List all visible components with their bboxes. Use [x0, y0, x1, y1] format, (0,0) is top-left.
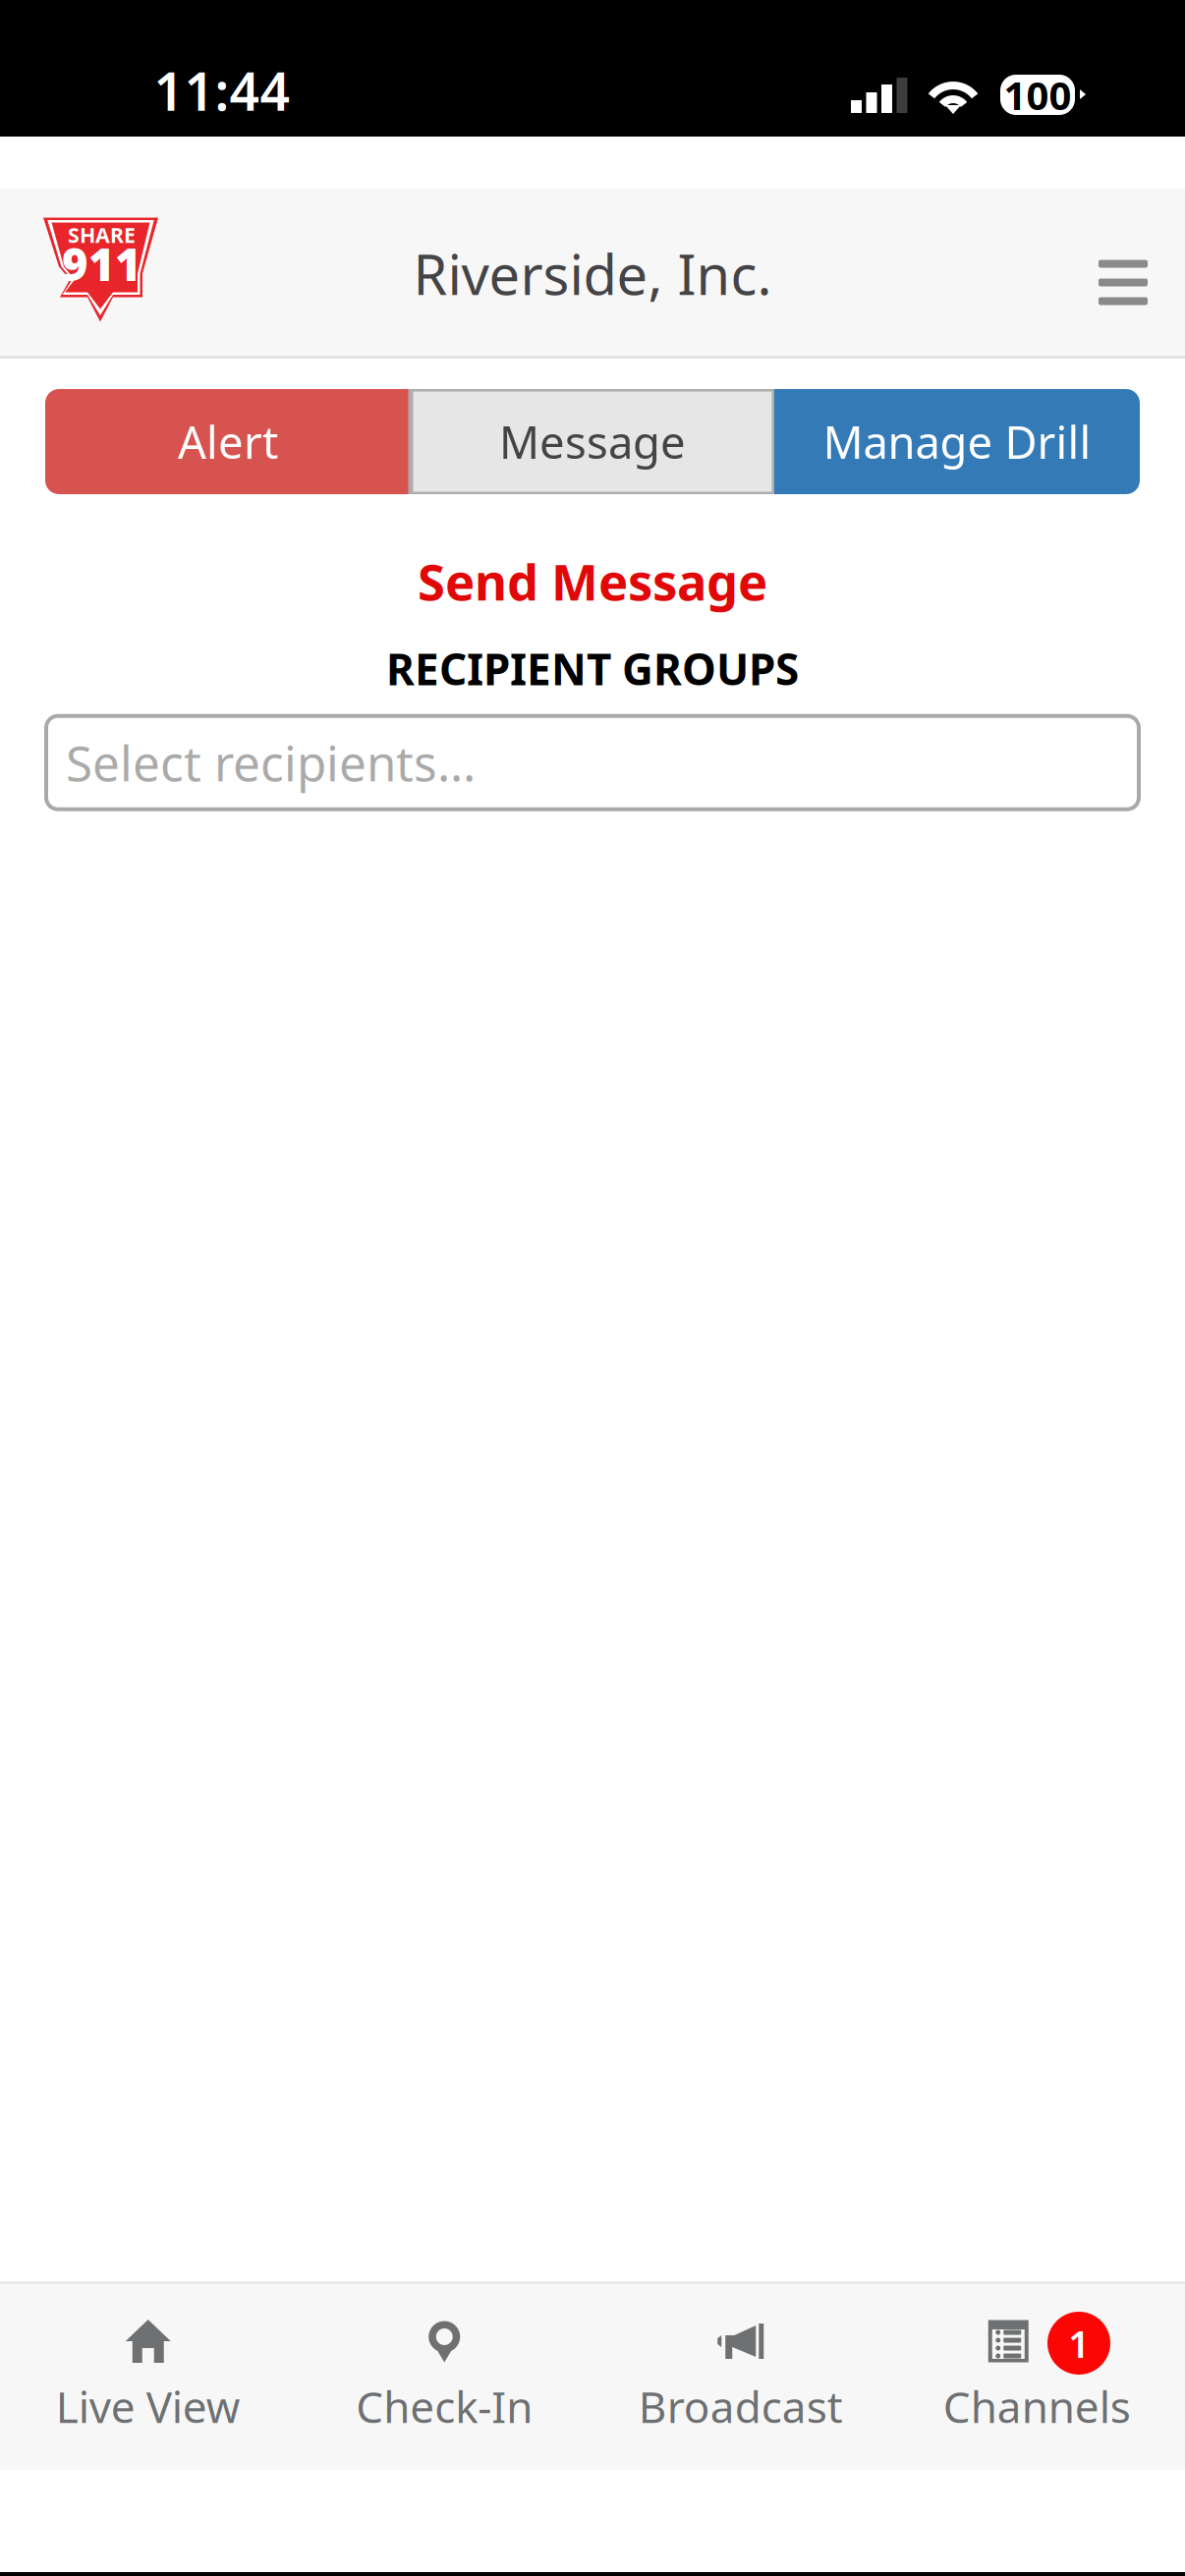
button[interactable]: Broadcast: [592, 2281, 889, 2470]
button[interactable]: Check-In: [296, 2281, 592, 2470]
staticText: Select recipients...: [66, 730, 476, 795]
staticText: 911: [62, 234, 141, 293]
button[interactable]: Live View: [0, 2281, 296, 2470]
staticText: Riverside, Inc.: [413, 237, 772, 310]
staticText: 100: [1004, 69, 1072, 121]
staticText: Live View: [56, 2378, 241, 2435]
staticText: 11:44: [154, 56, 290, 125]
staticText: Broadcast: [638, 2378, 843, 2435]
staticText: Manage Drill: [823, 412, 1091, 471]
staticText: Message: [499, 412, 686, 471]
button[interactable]: Channels: [889, 2281, 1185, 2470]
staticText: 1: [1068, 2318, 1090, 2368]
button[interactable]: Alert: [45, 389, 411, 494]
button[interactable]: Manage Drill: [774, 389, 1140, 494]
staticText: SHARE: [68, 221, 136, 249]
staticText: Check-In: [356, 2378, 533, 2435]
button[interactable]: Message: [411, 389, 774, 494]
staticText: Send Message: [418, 548, 767, 614]
button[interactable]: Menu: [1057, 215, 1185, 333]
staticText: RECIPIENT GROUPS: [386, 640, 799, 697]
staticText: Channels: [943, 2378, 1131, 2435]
staticText: Alert: [178, 412, 278, 471]
